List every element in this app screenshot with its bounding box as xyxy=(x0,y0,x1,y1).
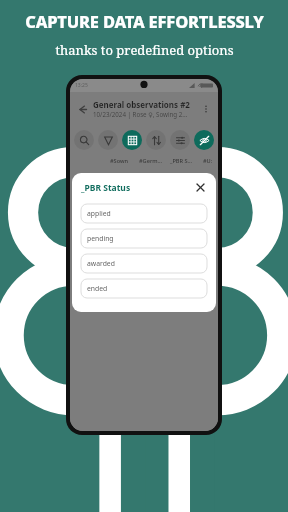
button[interactable]: Back xyxy=(74,101,90,117)
button[interactable]: Table view xyxy=(122,130,142,150)
button[interactable]: #Germ... xyxy=(135,154,166,168)
staticText: _PBR S... xyxy=(170,157,193,165)
button[interactable]: Close xyxy=(194,181,207,194)
staticText: ended xyxy=(87,284,108,293)
staticText: pending xyxy=(87,234,114,243)
staticText: CAPTURE DATA EFFORTLESSLY xyxy=(25,10,264,32)
button[interactable]: Hide xyxy=(194,130,214,150)
staticText: thanks to predefined options xyxy=(55,41,234,59)
staticText: _PBR Status xyxy=(81,182,194,194)
button[interactable]: ended xyxy=(81,279,207,298)
staticText: #U: xyxy=(203,157,213,165)
button[interactable]: #U: xyxy=(197,154,218,168)
button[interactable]: Draw xyxy=(98,130,118,150)
button[interactable]: _PBR S... xyxy=(166,154,197,168)
staticText: General observations #2 xyxy=(93,99,190,110)
staticText: 10/23/2024 | Rose ♀, Sowing 2... xyxy=(93,110,188,118)
staticText: #Germ... xyxy=(139,157,163,165)
staticText: applied xyxy=(87,209,111,218)
staticText: #Sown xyxy=(110,157,129,165)
button[interactable]: #Sown xyxy=(104,154,135,168)
button[interactable]: Filter xyxy=(170,130,190,150)
button[interactable]: awarded xyxy=(81,254,207,273)
button[interactable]: applied xyxy=(81,204,207,223)
button[interactable]: pending xyxy=(81,229,207,248)
staticText: 13:25 xyxy=(75,82,88,89)
button[interactable]: Sort xyxy=(146,130,166,150)
button[interactable]: More options xyxy=(198,101,214,117)
button[interactable]: Search xyxy=(74,130,94,150)
staticText: awarded xyxy=(87,259,115,268)
